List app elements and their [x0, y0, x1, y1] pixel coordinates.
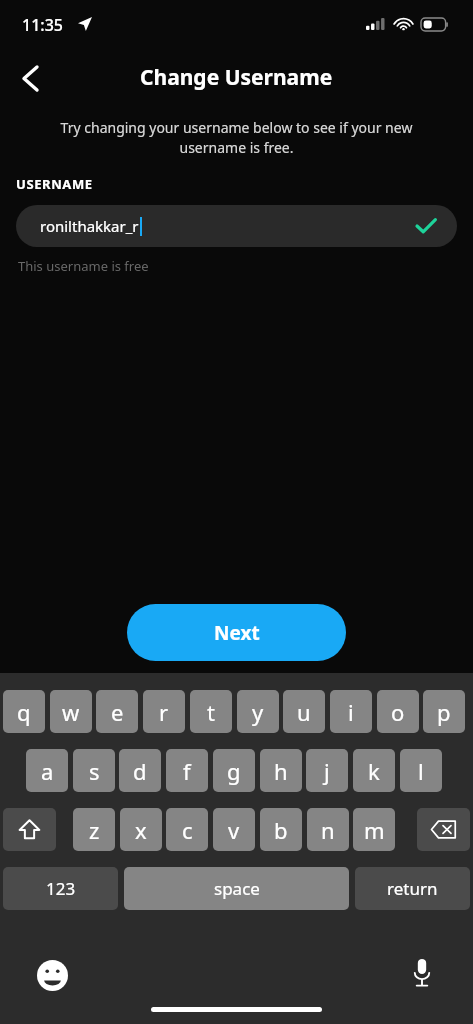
staticText: v [228, 815, 240, 845]
staticText: h [274, 756, 288, 786]
button[interactable]: x [120, 808, 162, 851]
staticText: 123 [46, 877, 76, 900]
button[interactable]: ronilthakkar_r [16, 205, 457, 247]
staticText: f [183, 756, 191, 786]
button[interactable]: Next [127, 604, 346, 661]
staticText: Try changing your username below to see … [40, 118, 433, 158]
button[interactable]: i [330, 690, 372, 733]
button[interactable]: 123 [3, 867, 118, 910]
button[interactable]: j [306, 749, 348, 792]
button[interactable]: g [213, 749, 255, 792]
staticText: This username is free [18, 257, 149, 275]
staticText: ronilthakkar_r [40, 216, 139, 236]
staticText: k [368, 756, 380, 786]
staticText: c [182, 815, 193, 845]
staticText: o [391, 697, 405, 727]
button[interactable]: e [96, 690, 138, 733]
staticText: p [437, 697, 451, 727]
staticText: space [214, 877, 260, 900]
button[interactable]: y [237, 690, 279, 733]
staticText: e [111, 697, 124, 727]
staticText: t [207, 697, 215, 727]
staticText: 11:35 [22, 14, 63, 36]
button[interactable]: d [119, 749, 161, 792]
button[interactable]: h [260, 749, 302, 792]
staticText: y [252, 697, 264, 727]
button[interactable]: a [26, 749, 68, 792]
button[interactable]: o [377, 690, 419, 733]
button[interactable]: l [400, 749, 442, 792]
staticText: m [364, 815, 385, 845]
staticText: u [297, 697, 311, 727]
button[interactable]: Backspace [417, 808, 470, 851]
button[interactable]: c [166, 808, 208, 851]
staticText: return [387, 877, 438, 900]
button[interactable]: v [213, 808, 255, 851]
button[interactable]: u [283, 690, 325, 733]
staticText: j [324, 756, 330, 786]
staticText: i [348, 697, 354, 727]
staticText: z [89, 815, 100, 845]
button[interactable]: Shift [3, 808, 56, 851]
button[interactable]: space [124, 867, 349, 910]
staticText: Next [214, 620, 260, 646]
button[interactable]: s [73, 749, 115, 792]
staticText: USERNAME [16, 175, 93, 193]
staticText: n [321, 815, 335, 845]
button[interactable]: z [73, 808, 115, 851]
staticText: d [133, 756, 147, 786]
button[interactable]: n [307, 808, 349, 851]
button[interactable]: q [3, 690, 45, 733]
button[interactable]: f [166, 749, 208, 792]
staticText: b [274, 815, 288, 845]
button[interactable]: p [423, 690, 465, 733]
button[interactable]: w [50, 690, 92, 733]
button[interactable]: return [355, 867, 470, 910]
button[interactable]: k [353, 749, 395, 792]
staticText: q [17, 697, 31, 727]
button[interactable]: Back [4, 52, 56, 104]
staticText: w [62, 697, 80, 727]
staticText: Change Username [140, 63, 333, 92]
staticText: s [89, 756, 100, 786]
button[interactable]: t [190, 690, 232, 733]
staticText: g [227, 756, 241, 786]
button[interactable]: m [353, 808, 395, 851]
button[interactable]: Emoji [27, 950, 77, 1000]
button[interactable]: r [143, 690, 185, 733]
staticText: x [135, 815, 147, 845]
staticText: a [41, 756, 54, 786]
staticText: r [159, 697, 169, 727]
button[interactable]: b [260, 808, 302, 851]
staticText: l [418, 756, 424, 786]
button[interactable]: Dictation [397, 948, 447, 998]
